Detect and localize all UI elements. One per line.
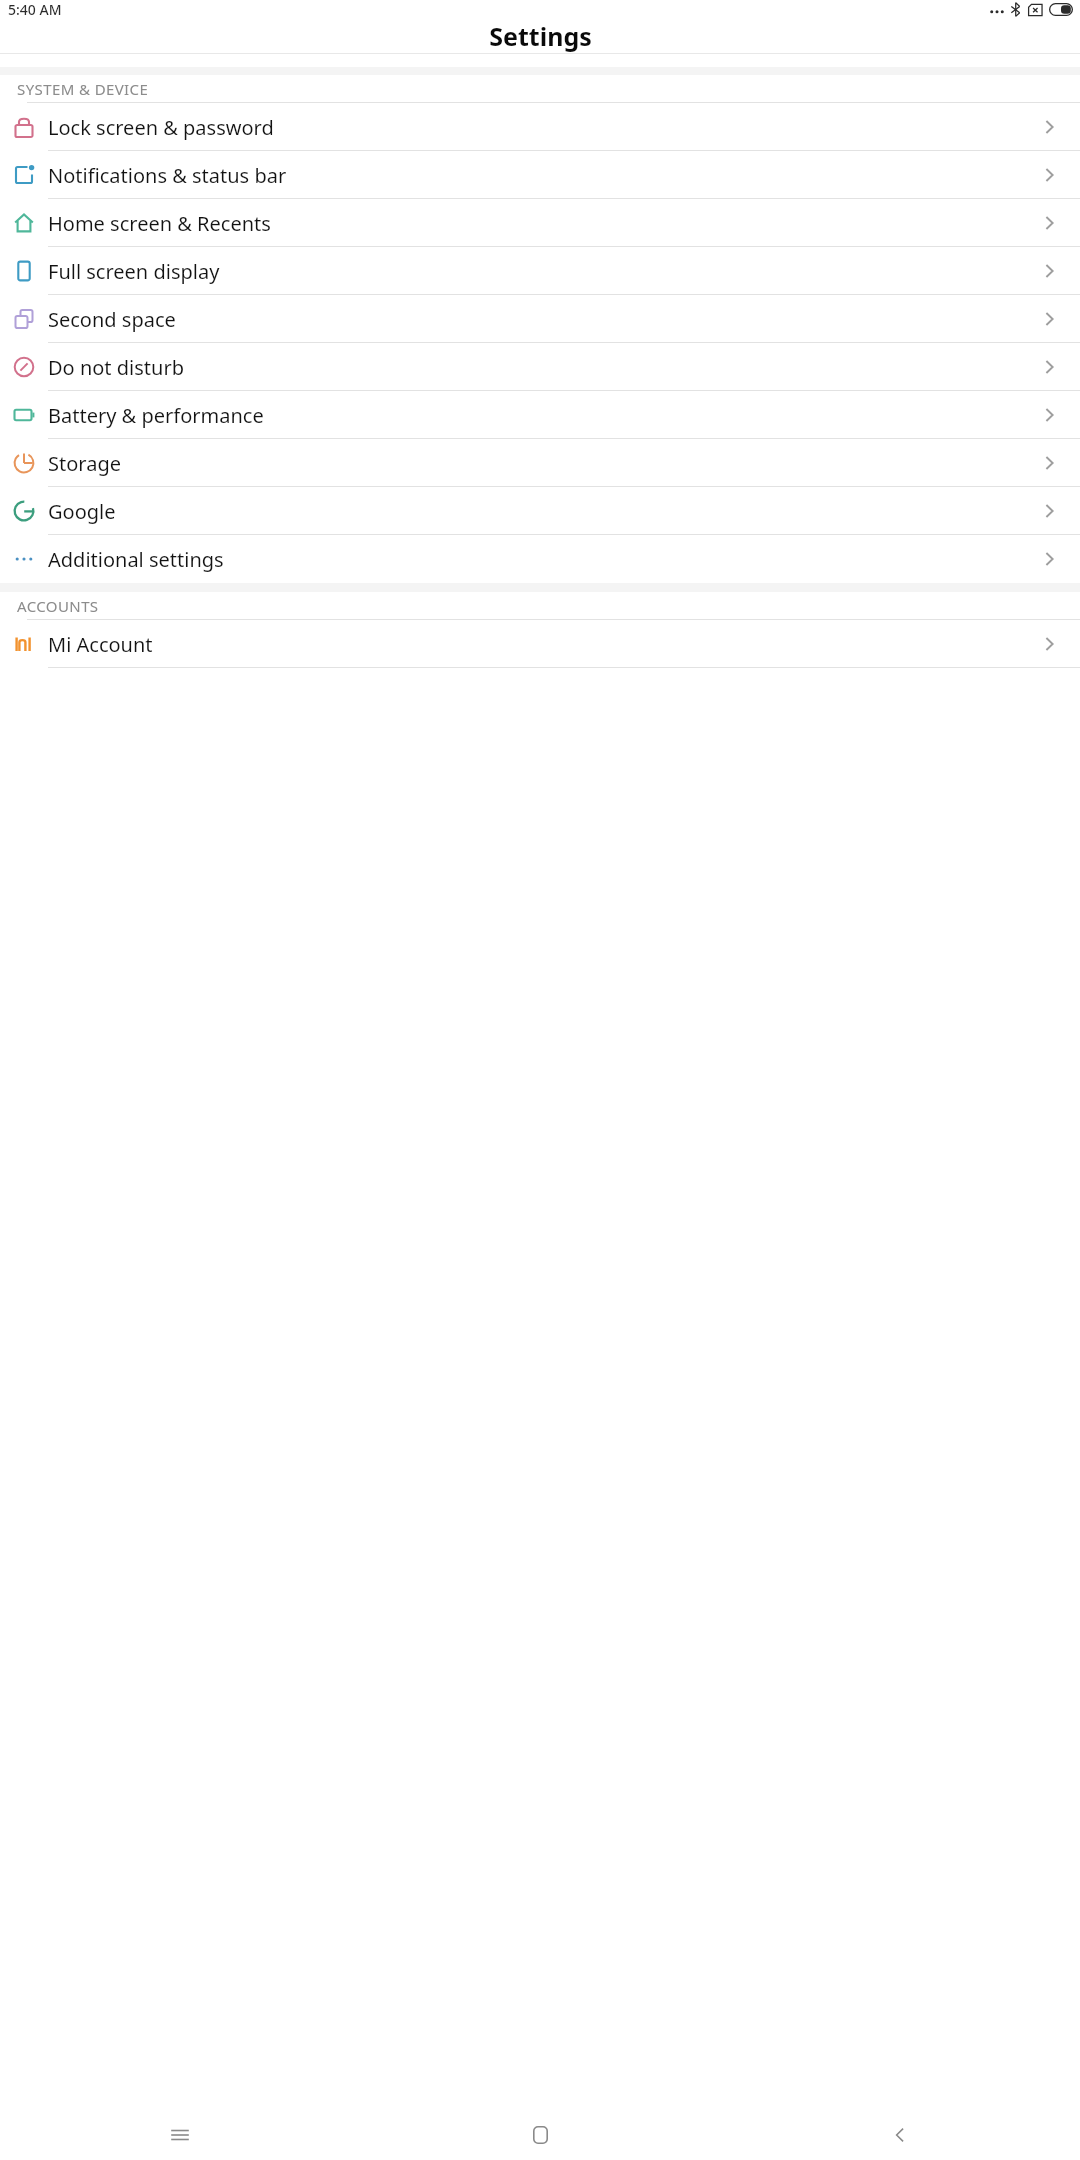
staticText: Do not disturb bbox=[48, 354, 1036, 381]
staticText: ACCOUNTS bbox=[17, 596, 99, 616]
button[interactable]: Storage bbox=[0, 439, 1080, 487]
button[interactable]: Full screen display bbox=[0, 247, 1080, 295]
button[interactable]: Home bbox=[360, 2121, 720, 2148]
staticText: Notifications & status bar bbox=[48, 162, 1036, 189]
button[interactable]: Battery & performance bbox=[0, 391, 1080, 439]
staticText: SYSTEM & DEVICE bbox=[17, 79, 149, 99]
staticText: Second space bbox=[48, 306, 1036, 333]
button[interactable]: Notifications & status bar bbox=[0, 151, 1080, 199]
button[interactable]: Lock screen & password bbox=[0, 103, 1080, 151]
staticText: Storage bbox=[48, 450, 1036, 477]
button[interactable]: Additional settings bbox=[0, 535, 1080, 583]
button[interactable]: Mi Account bbox=[0, 620, 1080, 668]
staticText: Home screen & Recents bbox=[48, 210, 1036, 237]
staticText: Additional settings bbox=[48, 546, 1036, 573]
button[interactable]: Second space bbox=[0, 295, 1080, 343]
button[interactable]: Do not disturb bbox=[0, 343, 1080, 391]
staticText: Full screen display bbox=[48, 258, 1036, 285]
button[interactable]: Google bbox=[0, 487, 1080, 535]
staticText: Battery & performance bbox=[48, 402, 1036, 429]
staticText: Google bbox=[48, 498, 1036, 525]
staticText: Mi Account bbox=[48, 631, 1036, 658]
button[interactable]: Back bbox=[720, 2121, 1080, 2148]
staticText: Settings bbox=[489, 19, 592, 53]
button[interactable]: Menu bbox=[0, 2121, 360, 2148]
staticText: 5:40 AM bbox=[8, 0, 62, 18]
staticText: Lock screen & password bbox=[48, 114, 1036, 141]
button[interactable]: Home screen & Recents bbox=[0, 199, 1080, 247]
